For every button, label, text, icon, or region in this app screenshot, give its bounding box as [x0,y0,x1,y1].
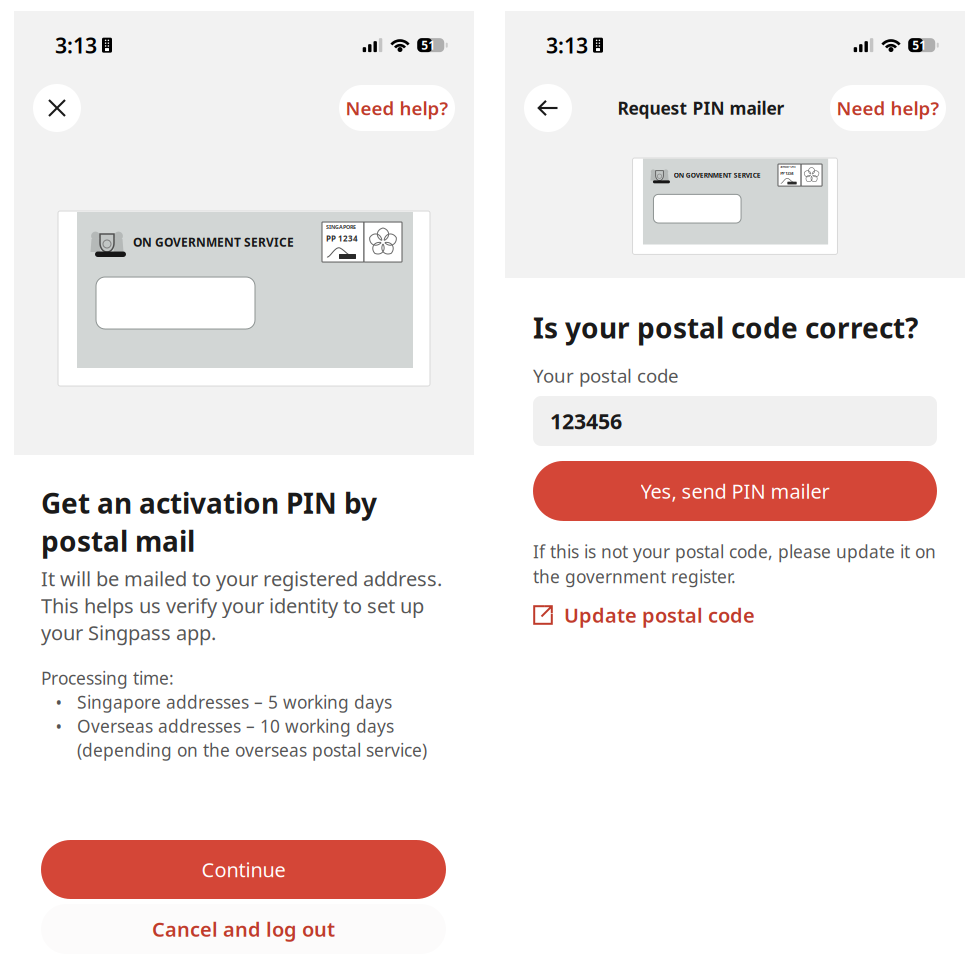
staticText: 3:13 [55,31,97,59]
staticText: Continue [201,856,285,883]
staticText: Yes, send PIN mailer [640,478,829,504]
staticText: It will be mailed to your registered add… [41,565,442,592]
staticText: 51 [421,37,435,53]
button[interactable]: Cancel and log out [41,904,446,954]
staticText: 51 [912,37,926,53]
button[interactable]: Yes, send PIN mailer [533,461,937,521]
staticText: ON GOVERNMENT SERVICE [133,234,294,250]
staticText: • [55,714,62,737]
button[interactable]: Back [524,84,572,132]
staticText: Need help? [836,96,939,120]
staticText: PP 1234 [326,233,358,244]
staticText: Request PIN mailer [617,96,784,119]
staticText: your Singpass app. [41,619,216,646]
staticText: 123456 [550,407,622,435]
staticText: Get an activation PIN by [41,484,377,522]
staticText: Need help? [345,96,448,120]
staticText: Processing time: [41,666,174,689]
button[interactable]: Update postal code [533,600,937,630]
staticText: SINGAPORE [780,165,795,168]
button[interactable]: Continue [41,840,446,899]
staticText: Overseas addresses – 10 working days [77,714,394,737]
staticText: Update postal code [564,602,755,628]
staticText: • [55,690,62,713]
staticText: SINGAPORE [326,223,356,231]
staticText: PP 1234 [780,170,793,176]
button[interactable]: Need help? [339,85,455,131]
staticText: If this is not your postal code, please … [533,540,936,563]
staticText: Your postal code [533,363,679,388]
button[interactable]: Need help? [830,85,946,131]
staticText: the government register. [533,565,736,588]
staticText: Singapore addresses – 5 working days [77,690,392,713]
staticText: (depending on the overseas postal servic… [77,738,427,761]
staticText: 3:13 [546,31,588,59]
button[interactable]: Close [33,84,81,132]
staticText: Is your postal code correct? [533,309,918,346]
staticText: postal mail [41,522,195,560]
staticText: ON GOVERNMENT SERVICE [674,171,761,180]
staticText: Cancel and log out [152,916,335,942]
staticText: This helps us verify your identity to se… [41,592,424,619]
